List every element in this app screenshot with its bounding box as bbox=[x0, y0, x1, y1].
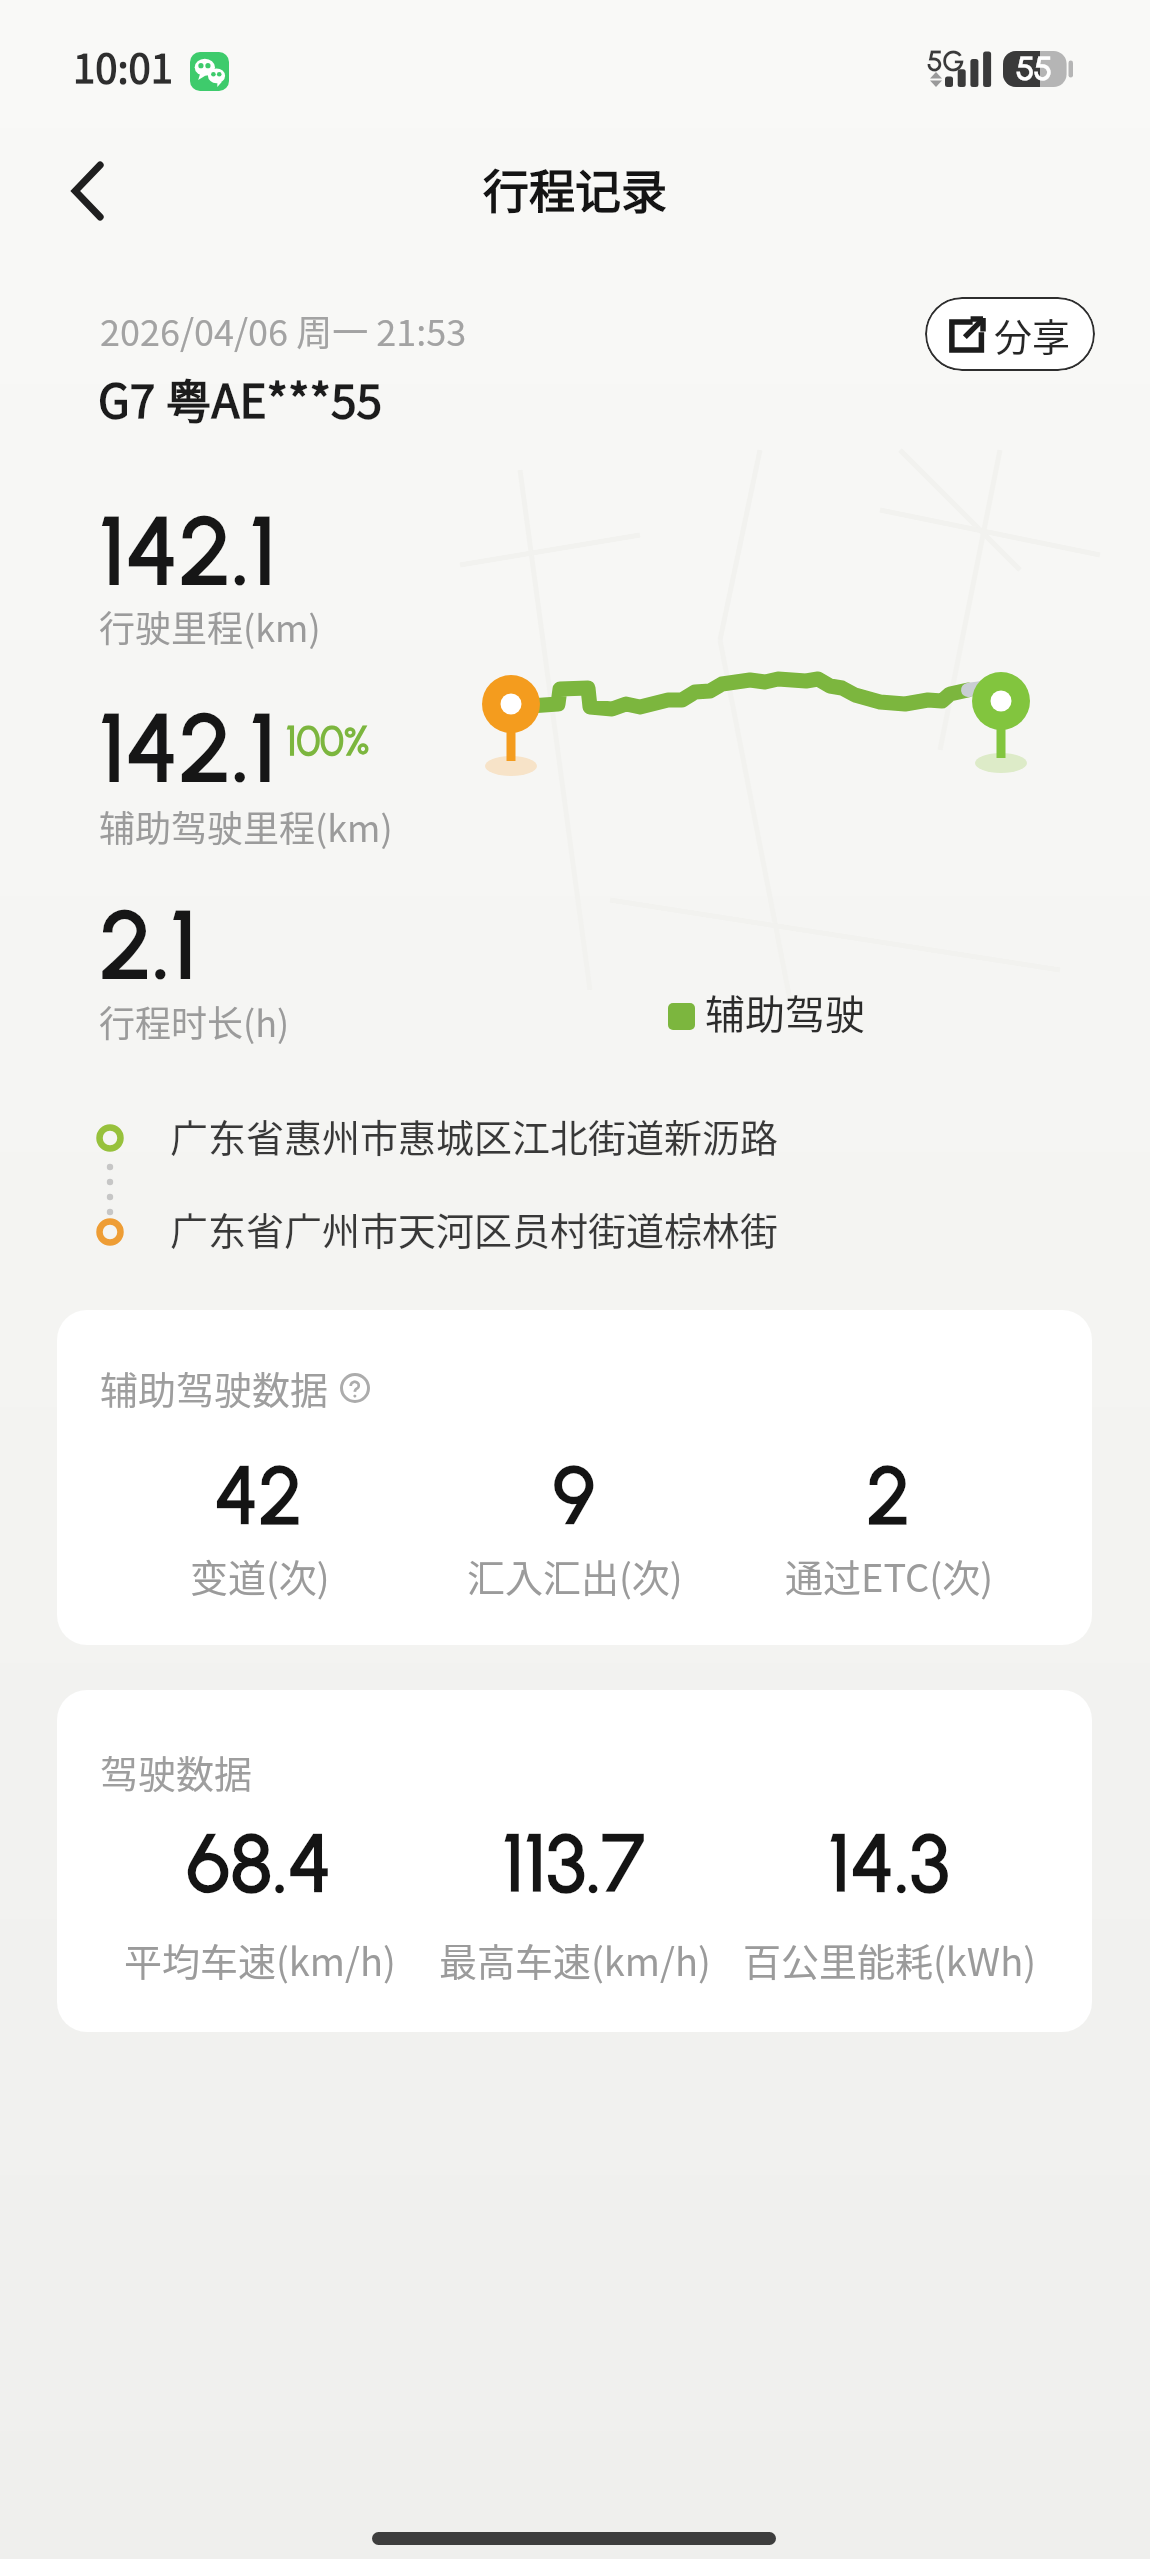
staticText: 68.4 bbox=[187, 1816, 333, 1911]
staticText: 113.7 bbox=[503, 1816, 646, 1911]
staticText: 2 bbox=[867, 1448, 912, 1543]
staticText: 100% bbox=[286, 717, 370, 765]
staticText: 行程时长(h) bbox=[99, 995, 290, 1047]
staticText: 平均车速(km/h) bbox=[124, 1932, 396, 1987]
staticText: 最高车速(km/h) bbox=[439, 1932, 711, 1987]
staticText: 2026/04/06 周一 21:53 bbox=[100, 304, 467, 356]
staticText: 5G bbox=[927, 44, 965, 78]
staticText: ? bbox=[349, 1374, 362, 1403]
staticText: 42 bbox=[215, 1448, 304, 1543]
staticText: 百公里能耗(kWh) bbox=[743, 1932, 1037, 1987]
staticText: 广东省惠州市惠城区江北街道新沥路 bbox=[170, 1108, 779, 1163]
staticText: 通过ETC(次) bbox=[785, 1548, 994, 1603]
staticText: 142.1 bbox=[100, 494, 278, 607]
staticText: 行驶里程(km) bbox=[99, 600, 321, 652]
staticText: 10:01 bbox=[73, 37, 173, 95]
staticText: 行程记录 bbox=[483, 155, 667, 222]
staticText: 9 bbox=[553, 1448, 596, 1543]
button[interactable] bbox=[72, 163, 104, 219]
staticText: 汇入汇出(次) bbox=[467, 1548, 683, 1603]
staticText: 辅助驾驶里程(km) bbox=[99, 800, 393, 852]
staticText: 55 bbox=[1016, 49, 1053, 89]
staticText: 变道(次) bbox=[190, 1548, 330, 1603]
staticText: G7 粤AE***55 bbox=[98, 365, 383, 432]
staticText: 2.1 bbox=[100, 888, 198, 1001]
staticText: 辅助驾驶数据 bbox=[100, 1360, 329, 1415]
staticText: 驾驶数据 bbox=[100, 1744, 253, 1799]
staticText: 14.3 bbox=[829, 1816, 951, 1911]
staticText: 分享 bbox=[994, 307, 1071, 362]
button[interactable]: 分享 bbox=[925, 297, 1095, 371]
staticText: 辅助驾驶 bbox=[705, 983, 865, 1041]
staticText: 142.1 bbox=[100, 691, 278, 804]
staticText: 广东省广州市天河区员村街道棕林街 bbox=[170, 1201, 779, 1256]
